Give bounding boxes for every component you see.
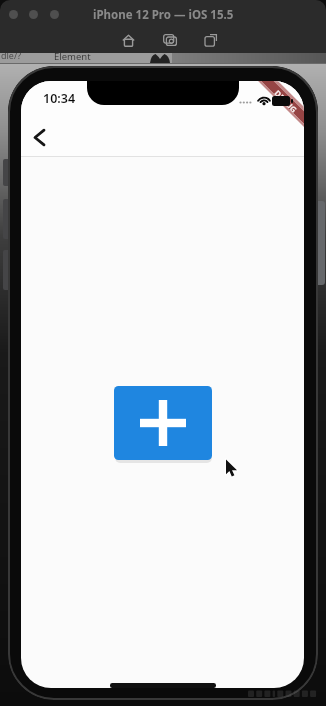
button[interactable]	[159, 29, 181, 51]
button[interactable]	[199, 29, 221, 51]
staticText: DEBUG	[274, 87, 300, 113]
button[interactable]	[29, 10, 38, 19]
button[interactable]	[117, 29, 139, 51]
button[interactable]	[50, 10, 59, 19]
staticText: dle/?	[1, 53, 22, 60]
button[interactable]	[21, 121, 57, 153]
staticText: iPhone 12 Pro — iOS 15.5	[93, 7, 234, 23]
staticText: Element	[54, 53, 91, 61]
button[interactable]	[9, 10, 18, 19]
button[interactable]	[114, 386, 212, 460]
staticText: 10:34	[43, 90, 76, 107]
